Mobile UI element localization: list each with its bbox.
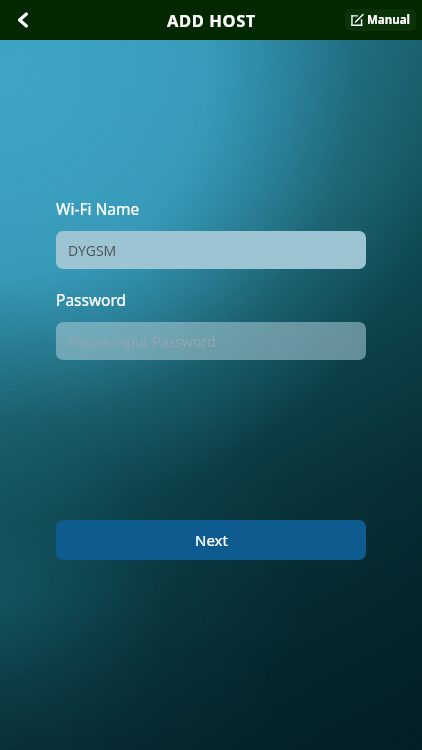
staticText: Manual — [367, 12, 410, 28]
button[interactable]: DYGSM — [56, 231, 366, 269]
staticText: ADD HOST — [167, 9, 256, 31]
button[interactable]: Next — [56, 520, 366, 560]
button[interactable]: Manual — [345, 9, 416, 31]
staticText: DYGSM — [68, 241, 117, 260]
staticText: Password — [56, 289, 127, 310]
staticText: Wi-Fi Name — [56, 198, 140, 219]
button[interactable]: Back — [0, 0, 48, 40]
staticText: Next — [195, 530, 228, 550]
button[interactable]: Please input Password — [56, 322, 366, 360]
staticText: Please input Password — [68, 332, 216, 351]
